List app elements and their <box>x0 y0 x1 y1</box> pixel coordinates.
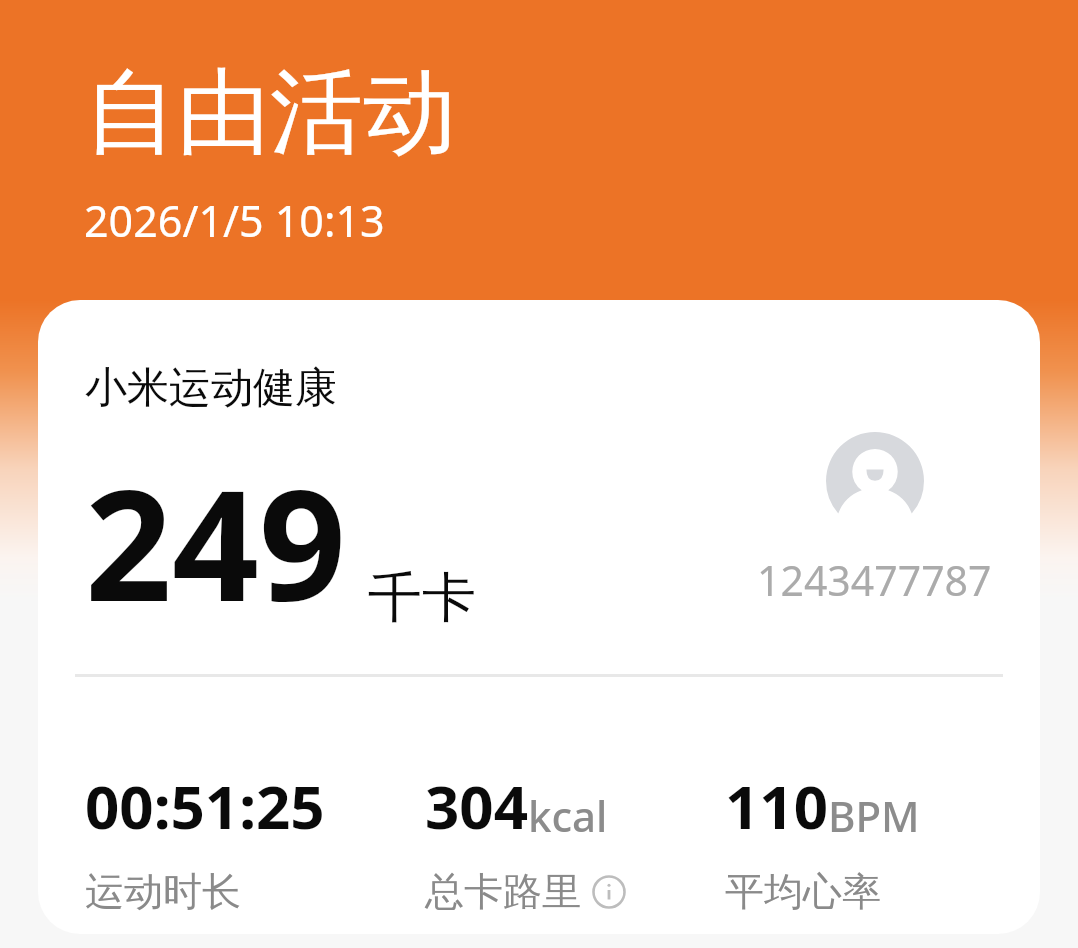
button[interactable]: 00:51:25 <box>85 765 425 916</box>
button[interactable]: Calorie info <box>591 874 627 910</box>
staticText: 304 <box>425 765 528 847</box>
button[interactable]: 小米运动健康 <box>38 300 1040 934</box>
button[interactable]: 304 <box>425 765 725 916</box>
staticText: BPM <box>828 787 920 844</box>
staticText: kcal <box>528 787 608 844</box>
staticText: 249 <box>85 439 346 646</box>
staticText: 110 <box>725 765 828 847</box>
button[interactable]: 110 <box>725 765 1005 916</box>
staticText: 小米运动健康 <box>85 362 337 415</box>
staticText: 总卡路里 <box>425 867 581 916</box>
staticText: 2026/1/5 10:13 <box>84 191 385 250</box>
staticText: 1243477787 <box>757 552 992 608</box>
staticText: 千卡 <box>368 564 476 632</box>
staticText: 00:51:25 <box>85 765 325 847</box>
button[interactable]: User profile <box>757 432 992 608</box>
staticText: 平均心率 <box>725 867 881 916</box>
staticText: 自由活动 <box>84 54 456 171</box>
staticText: 运动时长 <box>85 867 241 916</box>
